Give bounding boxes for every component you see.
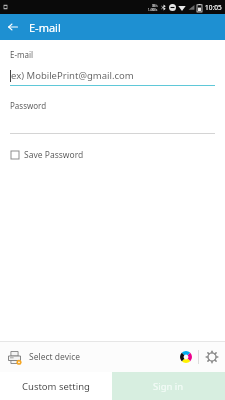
staticText: 0B/s xyxy=(152,4,158,8)
staticText: Select device xyxy=(29,351,81,363)
button[interactable]: Sign in xyxy=(112,372,225,400)
staticText: Custom setting xyxy=(22,380,90,393)
button[interactable]: Settings xyxy=(199,344,225,370)
button[interactable]: Custom setting xyxy=(0,372,112,400)
staticText: 10:05 xyxy=(205,3,222,12)
staticText: ex) MobilePrint@gmail.com xyxy=(11,69,134,82)
button[interactable]: Back xyxy=(0,14,26,40)
staticText: E-mail xyxy=(10,49,34,60)
staticText: Save Password xyxy=(24,149,84,161)
staticText: Password xyxy=(10,100,47,111)
button[interactable]: Color options xyxy=(174,345,198,369)
button[interactable]: Select device xyxy=(0,342,174,372)
staticText: E-mail xyxy=(29,20,61,35)
button[interactable]: Save Password xyxy=(10,147,85,163)
staticText: Sign in xyxy=(153,380,184,393)
staticText: 1.4KB/s xyxy=(148,8,158,12)
